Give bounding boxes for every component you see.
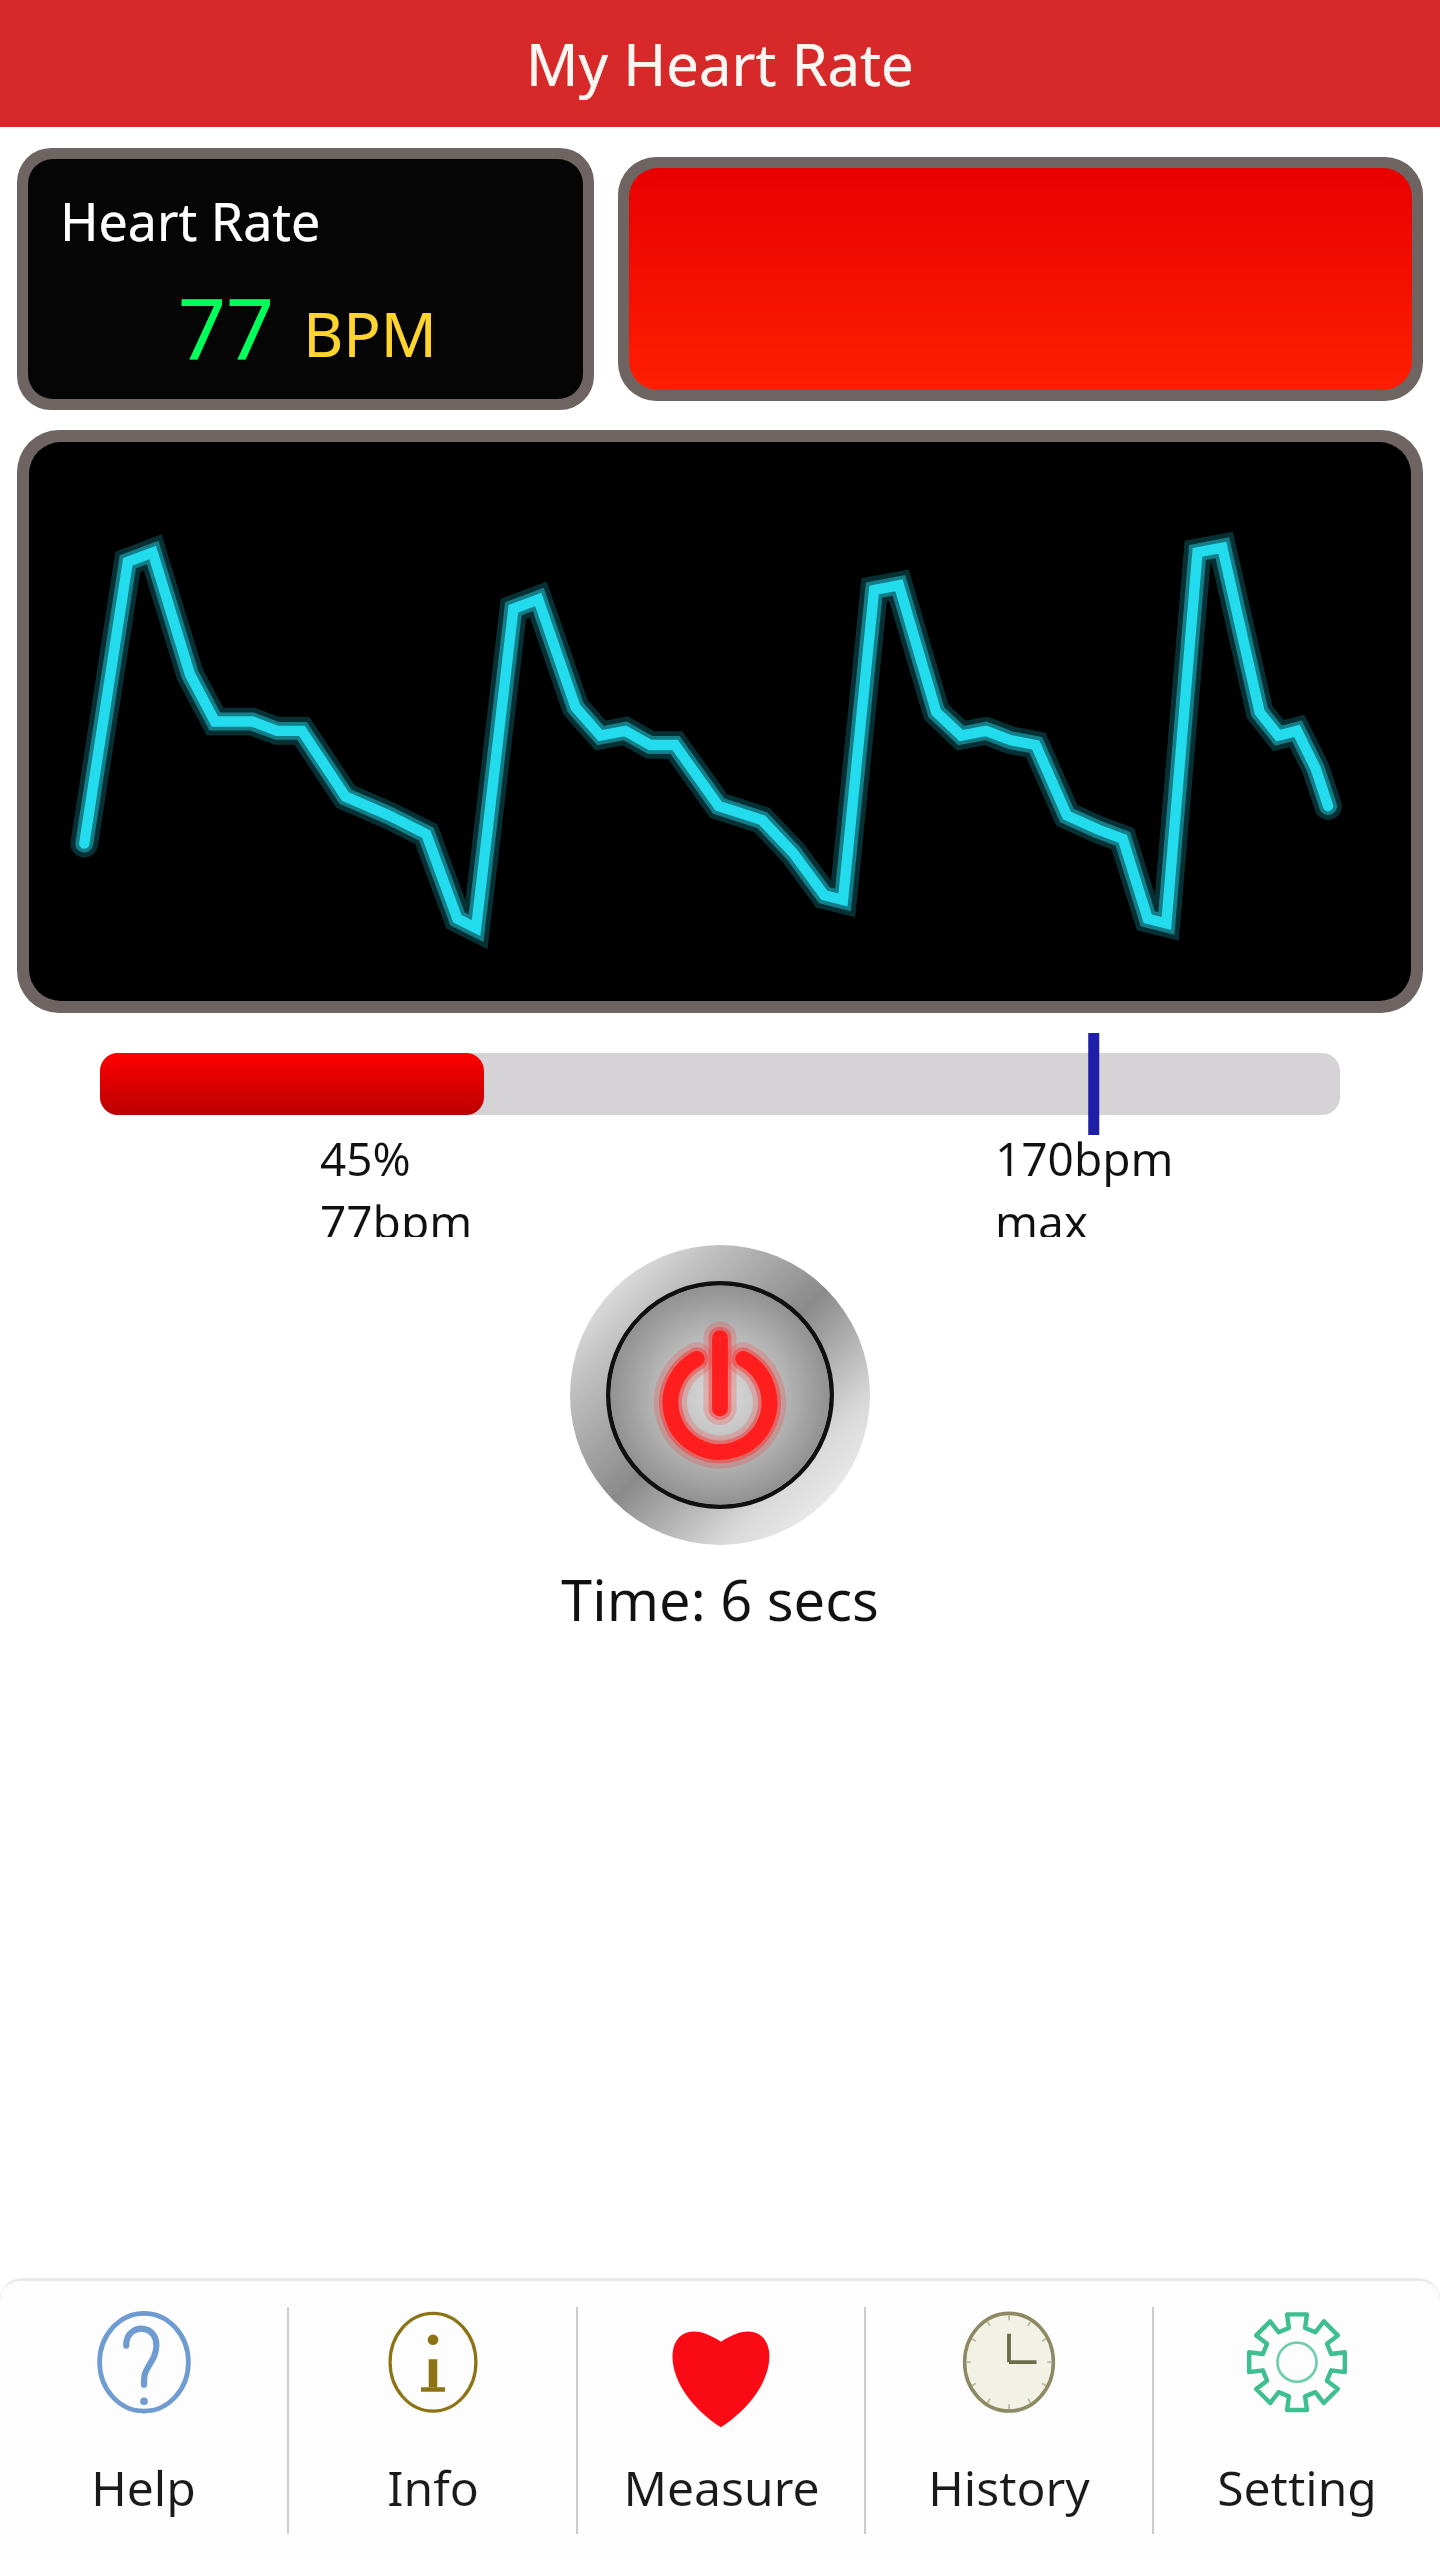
staticText: Time: 6 secs [0, 1561, 1440, 1637]
staticText: 170bpm [995, 1127, 1174, 1190]
button[interactable]: History [866, 2281, 1152, 2560]
staticText: Setting [1217, 2455, 1377, 2520]
button[interactable]: Help [0, 2281, 287, 2560]
staticText: Info [387, 2455, 479, 2520]
staticText: 77 [178, 269, 275, 383]
staticText: 45% [320, 1127, 411, 1190]
staticText: My Heart Rate [526, 24, 914, 103]
button[interactable] [29, 442, 1411, 1001]
button[interactable]: Heart Rate [28, 159, 583, 399]
staticText: Help [91, 2455, 196, 2520]
staticText: BPM [303, 291, 438, 375]
staticText: Measure [623, 2455, 820, 2520]
staticText: max [995, 1190, 1089, 1237]
button[interactable]: Alert [629, 168, 1412, 390]
staticText: Heart Rate [60, 185, 321, 256]
staticText: History [928, 2455, 1090, 2520]
button[interactable]: Info [289, 2281, 576, 2560]
button[interactable]: Setting [1154, 2281, 1440, 2560]
button[interactable]: Start measurement [570, 1245, 870, 1545]
staticText: 77bpm [320, 1190, 473, 1237]
button[interactable]: Measure [578, 2281, 864, 2560]
